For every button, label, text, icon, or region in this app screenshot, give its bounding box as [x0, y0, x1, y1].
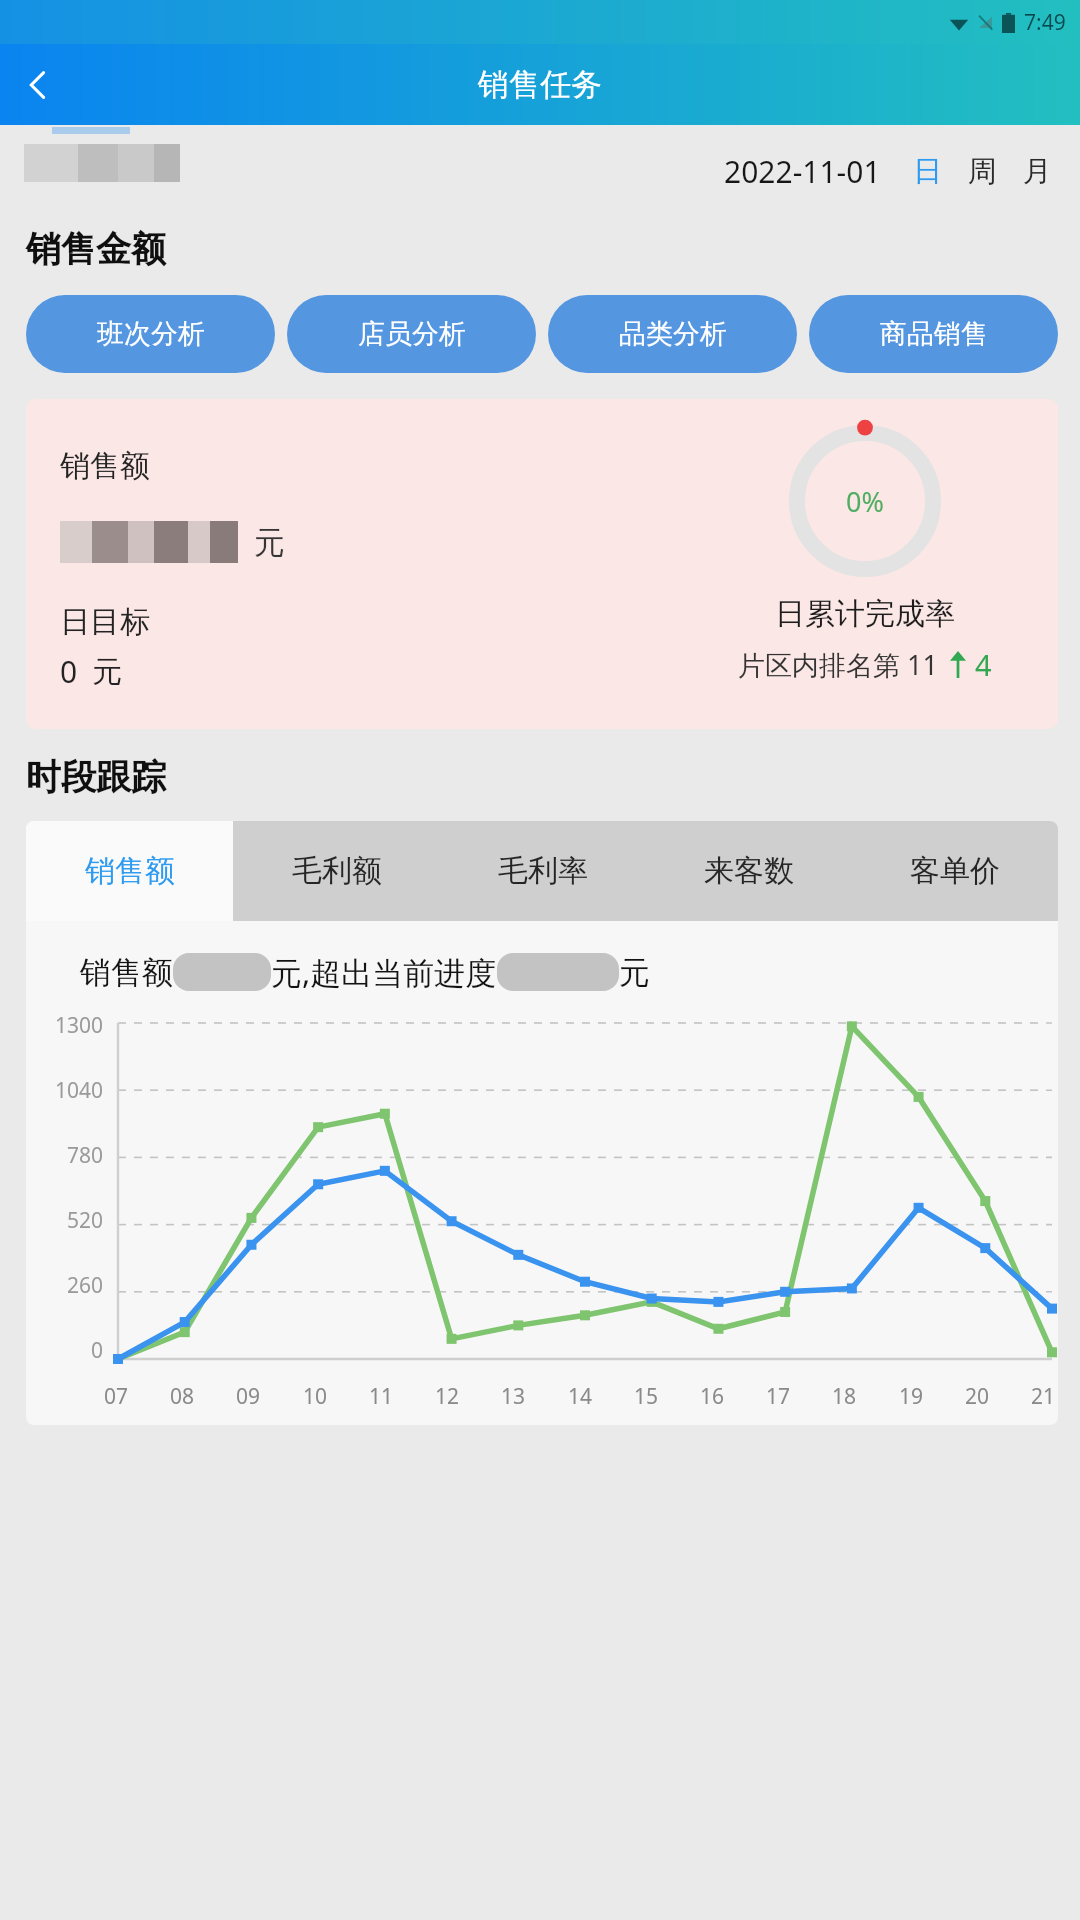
staticText: 店员分析: [358, 317, 466, 351]
staticText: 08: [170, 1382, 195, 1411]
staticText: 品类分析: [619, 317, 727, 351]
staticText: 4: [975, 645, 992, 684]
staticText: 18: [832, 1382, 857, 1411]
staticText: 客单价: [910, 852, 1000, 890]
button[interactable]: 客单价: [852, 821, 1058, 921]
staticText: 1040: [55, 1076, 104, 1105]
staticText: 0%: [846, 483, 884, 520]
staticText: 元: [92, 653, 122, 691]
staticText: 15: [634, 1382, 659, 1411]
staticText: 时段跟踪: [26, 755, 166, 799]
button[interactable]: 来客数: [646, 821, 852, 921]
button[interactable]: 班次分析: [26, 295, 275, 373]
staticText: 07: [104, 1382, 129, 1411]
staticText: 元: [619, 953, 650, 992]
staticText: 毛利额: [292, 852, 382, 890]
button[interactable]: 毛利率: [440, 821, 646, 921]
button[interactable]: 店员分析: [287, 295, 536, 373]
staticText: 16: [700, 1382, 725, 1411]
staticText: 销售额: [80, 953, 173, 992]
button[interactable]: Back: [6, 53, 70, 117]
button[interactable]: 销售额: [26, 399, 1058, 729]
staticText: 11: [369, 1382, 394, 1411]
staticText: 520: [67, 1206, 104, 1235]
staticText: 销售任务: [478, 65, 602, 104]
staticText: 来客数: [704, 852, 794, 890]
staticText: 1300: [55, 1011, 104, 1040]
button[interactable]: 日: [905, 153, 950, 190]
button[interactable]: 商品销售: [809, 295, 1058, 373]
staticText: 10: [303, 1382, 328, 1411]
button[interactable]: 品类分析: [548, 295, 797, 373]
staticText: 销售金额: [26, 227, 166, 271]
button[interactable]: 周: [960, 153, 1005, 190]
staticText: 元,超出当前进度: [271, 951, 497, 993]
staticText: 销售额: [85, 852, 175, 890]
staticText: 260: [67, 1271, 104, 1300]
staticText: 日目标: [60, 603, 150, 641]
button[interactable]: 月: [1015, 153, 1060, 190]
staticText: 商品销售: [880, 317, 988, 351]
staticText: 13: [501, 1382, 526, 1411]
staticText: 销售额: [60, 447, 150, 485]
staticText: 17: [766, 1382, 791, 1411]
staticText: 20: [965, 1382, 990, 1411]
staticText: 毛利率: [498, 852, 588, 890]
staticText: 12: [435, 1382, 460, 1411]
staticText: 元: [254, 523, 285, 562]
staticText: 14: [568, 1382, 593, 1411]
button[interactable]: 毛利额: [233, 821, 440, 921]
button[interactable]: 2022-11-01: [724, 151, 881, 192]
staticText: 片区内排名第 11: [738, 646, 938, 683]
staticText: 日累计完成率: [775, 595, 955, 633]
staticText: 09: [236, 1382, 261, 1411]
button[interactable]: 销售额: [26, 821, 233, 921]
staticText: 班次分析: [97, 317, 205, 351]
staticText: 19: [899, 1382, 924, 1411]
staticText: 21: [1031, 1382, 1056, 1411]
staticText: 0: [60, 651, 78, 692]
staticText: 0: [91, 1336, 104, 1365]
staticText: 7:49: [1024, 8, 1066, 37]
staticText: 780: [67, 1141, 104, 1170]
